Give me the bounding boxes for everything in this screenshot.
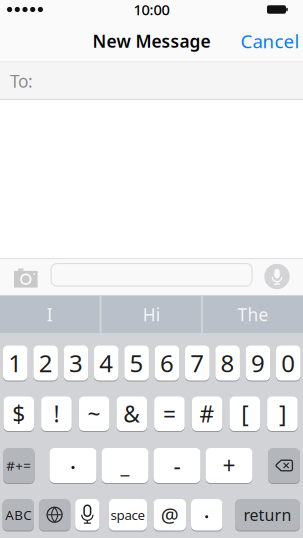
staticText: 6 bbox=[160, 347, 174, 379]
button[interactable] bbox=[14, 268, 38, 288]
staticText: [ bbox=[241, 399, 248, 429]
staticText: 5 bbox=[130, 347, 144, 379]
staticText: 3 bbox=[69, 347, 83, 379]
button[interactable]: 7 bbox=[185, 345, 210, 381]
button[interactable]: return bbox=[235, 498, 300, 531]
button[interactable]: 2 bbox=[33, 345, 58, 381]
staticText: I bbox=[47, 303, 53, 326]
staticText: $ bbox=[12, 399, 25, 429]
staticText: = bbox=[163, 399, 176, 429]
button[interactable]: = bbox=[154, 396, 185, 431]
staticText: #+= bbox=[6, 457, 31, 474]
staticText: # bbox=[200, 399, 215, 429]
staticText: Cancel bbox=[240, 29, 299, 53]
button[interactable] bbox=[51, 263, 253, 287]
button[interactable] bbox=[49, 447, 96, 483]
staticText: 4 bbox=[99, 347, 113, 379]
button[interactable]: Cancel bbox=[240, 29, 299, 53]
button[interactable]: 9 bbox=[246, 345, 270, 381]
button[interactable] bbox=[39, 498, 70, 531]
staticText: New Message bbox=[92, 29, 210, 52]
staticText: 9 bbox=[251, 347, 265, 379]
button[interactable]: & bbox=[116, 396, 147, 431]
staticText: The bbox=[237, 303, 268, 326]
staticText: 0 bbox=[281, 347, 295, 379]
button[interactable] bbox=[191, 498, 222, 531]
button[interactable]: - bbox=[153, 447, 200, 483]
staticText: return bbox=[243, 504, 291, 525]
button[interactable]: 1 bbox=[3, 345, 28, 381]
staticText: 8 bbox=[221, 347, 235, 379]
button[interactable]: + bbox=[205, 447, 252, 483]
staticText: ] bbox=[279, 399, 286, 429]
staticText: 7 bbox=[190, 347, 204, 379]
staticText: - bbox=[173, 450, 180, 480]
button[interactable]: ~ bbox=[79, 396, 109, 431]
button[interactable]: 3 bbox=[64, 345, 88, 381]
button[interactable]: 4 bbox=[94, 345, 119, 381]
staticText: space bbox=[110, 506, 145, 524]
button[interactable] bbox=[268, 447, 300, 483]
button[interactable]: The bbox=[203, 296, 303, 333]
staticText: ! bbox=[53, 399, 59, 429]
button[interactable]: 0 bbox=[276, 345, 301, 381]
button[interactable]: #+= bbox=[3, 447, 35, 483]
staticText: & bbox=[123, 399, 140, 429]
button[interactable]: 5 bbox=[124, 345, 149, 381]
button[interactable]: I bbox=[0, 296, 99, 333]
button[interactable]: 6 bbox=[155, 345, 179, 381]
button[interactable]: ! bbox=[41, 396, 72, 431]
staticText: + bbox=[222, 450, 235, 480]
button[interactable]: @ bbox=[154, 498, 186, 531]
staticText: @ bbox=[161, 501, 179, 528]
staticText: ~ bbox=[88, 399, 101, 429]
staticText: Hi bbox=[143, 303, 160, 326]
staticText: _ bbox=[120, 452, 129, 479]
button[interactable]: [ bbox=[229, 396, 260, 431]
button[interactable]: _ bbox=[101, 447, 148, 483]
staticText: 1 bbox=[8, 347, 22, 379]
button[interactable]: ABC bbox=[3, 498, 34, 531]
button[interactable]: ] bbox=[267, 396, 298, 431]
button[interactable]: space bbox=[109, 498, 147, 531]
button[interactable] bbox=[75, 498, 99, 531]
button[interactable]: Hi bbox=[101, 296, 201, 333]
button[interactable]: To: bbox=[10, 62, 300, 99]
staticText: 2 bbox=[39, 347, 53, 379]
button[interactable] bbox=[264, 264, 290, 289]
staticText: 10:00 bbox=[133, 0, 169, 19]
button[interactable]: # bbox=[192, 396, 222, 431]
staticText: ABC bbox=[5, 506, 31, 524]
button[interactable]: 8 bbox=[215, 345, 240, 381]
button[interactable]: $ bbox=[3, 396, 34, 431]
staticText: To: bbox=[10, 69, 33, 92]
